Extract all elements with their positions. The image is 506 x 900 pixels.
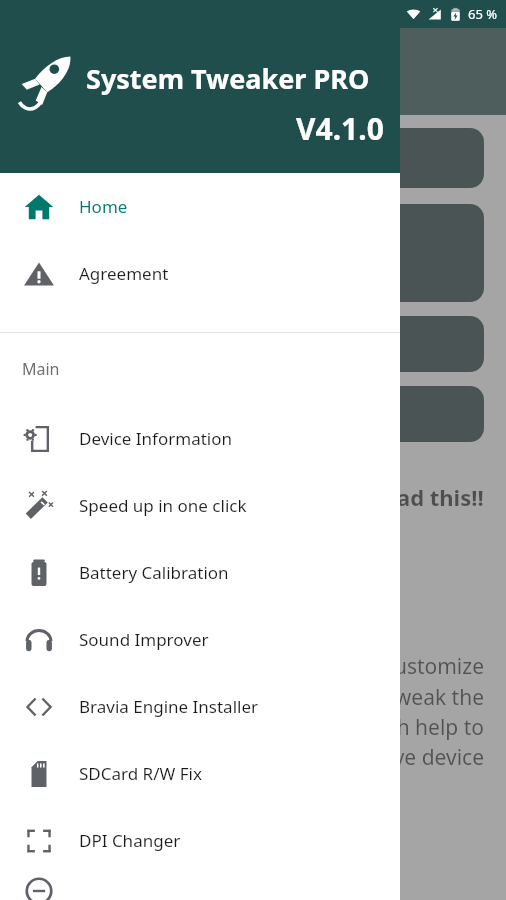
staticText: DPI Changer <box>79 829 181 852</box>
staticText: Please read this!! <box>298 482 484 512</box>
staticText: Bravia Engine Installer <box>79 695 259 718</box>
staticText: Main <box>22 358 60 380</box>
button[interactable]: More <box>0 874 400 900</box>
staticText: Sound Improver <box>79 628 209 651</box>
staticText: Device Information <box>79 427 233 450</box>
staticText: SDCard R/W Fix <box>79 762 202 785</box>
staticText: You can customize and tweak the system w… <box>291 652 484 771</box>
button[interactable] <box>22 386 484 442</box>
staticText: Battery Calibration <box>79 561 229 584</box>
staticText: Agreement <box>79 262 169 285</box>
button[interactable]: SDCard R/W Fix <box>0 740 400 807</box>
staticText: V4.1.0 <box>296 108 384 149</box>
staticText: System Tweaker PRO <box>86 60 370 97</box>
staticText: Speed up in one click <box>79 494 247 517</box>
button[interactable]: DPI Changer <box>0 807 400 874</box>
button[interactable]: Speed up in one click <box>0 472 400 539</box>
button[interactable]: Sound Improver <box>0 606 400 673</box>
button[interactable]: Device Information <box>0 405 400 472</box>
button[interactable]: Agreement <box>0 240 400 307</box>
button[interactable]: Bravia Engine Installer <box>0 673 400 740</box>
button[interactable] <box>22 204 484 302</box>
button[interactable] <box>22 128 484 188</box>
staticText: Home <box>79 195 128 218</box>
staticText: 65 % <box>468 5 498 23</box>
button[interactable]: Home <box>0 173 400 240</box>
button[interactable]: Battery Calibration <box>0 539 400 606</box>
button[interactable] <box>22 316 484 372</box>
